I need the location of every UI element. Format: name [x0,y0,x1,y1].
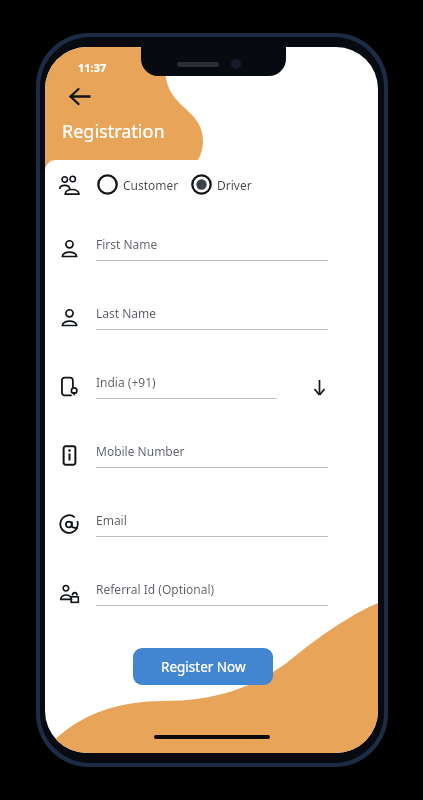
staticText: Registration [62,119,165,144]
button[interactable]: Mobile Number [45,427,342,484]
button[interactable]: Back [59,75,101,117]
button[interactable]: Select country code [304,372,334,402]
staticText: Mobile Number [96,443,185,459]
staticText: Driver [217,177,252,193]
staticText: Email [96,512,127,528]
staticText: Last Name [96,305,157,321]
staticText: Customer [123,177,179,193]
staticText: Referral Id (Optional) [96,581,215,597]
button[interactable]: Driver [191,174,252,195]
staticText: First Name [96,236,158,252]
button[interactable]: Email [45,496,342,553]
staticText: Register Now [161,658,246,676]
button[interactable]: Customer [97,174,179,195]
button[interactable]: First Name [45,220,342,277]
button[interactable]: Last Name [45,289,342,346]
staticText: India (+91) [96,374,156,390]
button[interactable]: India (+91) [45,358,342,415]
staticText: 11:37 [78,60,107,75]
button[interactable]: Register Now [133,648,273,685]
button[interactable]: Referral Id (Optional) [45,565,342,622]
